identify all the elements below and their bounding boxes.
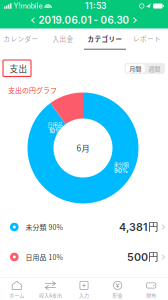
button[interactable]: 週間 xyxy=(145,64,164,73)
button[interactable]: 日用品 10% xyxy=(0,242,168,272)
button[interactable]: 入力 xyxy=(67,276,101,300)
staticText: 未分類 xyxy=(113,161,128,168)
button[interactable]: カテゴリー xyxy=(84,28,126,50)
staticText: 500円 xyxy=(127,250,159,264)
staticText: Y!mobile xyxy=(12,2,43,10)
staticText: 週間 xyxy=(148,64,160,73)
staticText: 未分類 90% xyxy=(26,222,63,232)
button[interactable]: カレンダー xyxy=(0,28,42,50)
staticText: 日用品 10% xyxy=(26,252,63,262)
staticText: カテゴリー xyxy=(87,34,122,43)
staticText: 6月 xyxy=(76,142,89,154)
button[interactable]: Previous period xyxy=(28,13,38,27)
staticText: カレンダー xyxy=(3,34,38,43)
button[interactable]: 未分類 90% xyxy=(0,212,168,242)
staticText: 支出 xyxy=(9,62,27,75)
staticText: 2019.06.01 - 06.30 xyxy=(38,14,129,26)
staticText: レポート xyxy=(133,34,161,43)
button[interactable]: 入出金 xyxy=(42,28,84,50)
button[interactable]: ホーム xyxy=(0,276,34,300)
button[interactable]: 支出 xyxy=(0,60,32,77)
staticText: 入出金 xyxy=(52,34,73,43)
staticText: 日用品 xyxy=(47,121,62,128)
button[interactable]: Next period xyxy=(129,13,140,27)
button[interactable]: 財布 xyxy=(134,276,168,300)
staticText: 10% xyxy=(49,128,61,135)
button[interactable]: 貯金 xyxy=(101,276,134,300)
button[interactable]: 収入&支出 xyxy=(34,276,67,300)
staticText: 入力 xyxy=(79,291,89,299)
staticText: 財布 xyxy=(146,291,156,299)
button[interactable]: 月間 xyxy=(126,64,145,73)
button[interactable]: レポート xyxy=(126,28,168,50)
staticText: 支出の円グラフ xyxy=(8,85,57,95)
staticText: 月間 xyxy=(129,64,141,73)
staticText: 11:53 xyxy=(85,1,106,11)
staticText: 90% xyxy=(114,167,128,174)
staticText: 4,381円 xyxy=(119,220,159,234)
staticText: ホーム xyxy=(9,291,24,299)
staticText: 収入&支出 xyxy=(39,291,62,299)
staticText: 貯金 xyxy=(113,291,123,299)
